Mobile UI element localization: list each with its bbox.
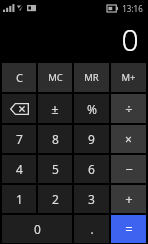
button[interactable]: 5 xyxy=(38,155,72,183)
button[interactable]: + xyxy=(111,185,146,213)
staticText: 8 xyxy=(52,131,59,147)
staticText: 6 xyxy=(88,161,95,177)
staticText: 5 xyxy=(52,161,59,177)
staticText: M+ xyxy=(121,71,136,84)
staticText: ± xyxy=(51,100,59,118)
staticText: 0 xyxy=(34,221,41,237)
button[interactable]: MR xyxy=(74,63,109,92)
button[interactable]: 1 xyxy=(2,185,36,213)
button[interactable]: × xyxy=(111,125,146,153)
staticText: 13:16 xyxy=(122,3,143,14)
staticText: ÷ xyxy=(125,100,133,118)
staticText: % xyxy=(87,101,97,117)
staticText: 2 xyxy=(52,191,59,207)
staticText: 9 xyxy=(88,131,95,147)
staticText: = xyxy=(125,220,133,238)
staticText: C xyxy=(16,70,23,85)
button[interactable]: 8 xyxy=(38,125,72,153)
button[interactable]: C xyxy=(2,63,36,92)
staticText: 7 xyxy=(16,131,23,147)
button[interactable]: = xyxy=(111,215,146,243)
button[interactable]: . xyxy=(74,215,109,243)
button[interactable]: 3 xyxy=(74,185,109,213)
button[interactable]: ± xyxy=(38,94,72,123)
staticText: 0 xyxy=(121,19,139,60)
button[interactable]: 9 xyxy=(74,125,109,153)
button[interactable]: 7 xyxy=(2,125,36,153)
staticText: MC xyxy=(48,71,63,84)
button[interactable]: ÷ xyxy=(111,94,146,123)
button[interactable]: MC xyxy=(38,63,72,92)
staticText: 3 xyxy=(88,191,95,207)
staticText: 1 xyxy=(16,191,23,207)
staticText: . xyxy=(90,221,94,237)
button[interactable]: − xyxy=(111,155,146,183)
button[interactable]: % xyxy=(74,94,109,123)
button[interactable]: 6 xyxy=(74,155,109,183)
button[interactable]: 0 xyxy=(2,215,72,243)
button[interactable]: 4 xyxy=(2,155,36,183)
button[interactable]: 2 xyxy=(38,185,72,213)
staticText: × xyxy=(125,131,132,147)
staticText: + xyxy=(125,190,133,208)
staticText: 4 xyxy=(16,161,23,177)
button[interactable]: M+ xyxy=(111,63,146,92)
staticText: MR xyxy=(84,71,99,84)
staticText: − xyxy=(125,160,133,178)
button[interactable]: Backspace xyxy=(2,94,36,123)
